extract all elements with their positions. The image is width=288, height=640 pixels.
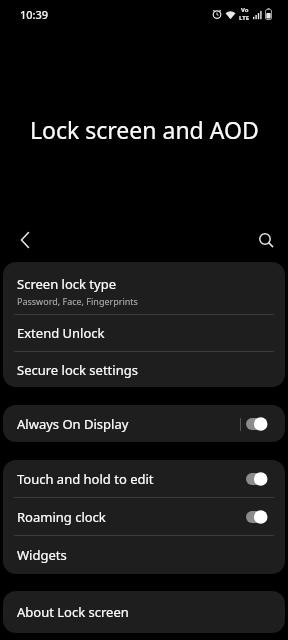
staticText: 10:39 xyxy=(20,7,49,22)
staticText: Touch and hold to edit xyxy=(17,470,154,488)
button[interactable]: Roaming clock xyxy=(3,498,285,535)
button[interactable]: Secure lock settings xyxy=(3,352,285,387)
staticText: Secure lock settings xyxy=(17,361,138,379)
staticText: Roaming clock xyxy=(17,508,106,526)
staticText: Screen lock type xyxy=(17,275,116,293)
staticText: About Lock screen xyxy=(17,603,129,621)
staticText: Widgets xyxy=(17,546,67,564)
staticText: Password, Face, Fingerprints xyxy=(17,295,138,307)
staticText: LTE xyxy=(239,14,250,22)
button[interactable]: Widgets xyxy=(3,536,285,574)
button[interactable]: Always On Display xyxy=(3,405,285,442)
button[interactable]: Screen lock type xyxy=(3,262,285,314)
staticText: Always On Display xyxy=(17,415,129,433)
button[interactable]: About Lock screen xyxy=(3,591,285,633)
button[interactable] xyxy=(6,220,46,260)
staticText: Extend Unlock xyxy=(17,324,105,342)
staticText: Vo xyxy=(241,6,249,14)
button[interactable]: Extend Unlock xyxy=(3,315,285,351)
button[interactable]: Touch and hold to edit xyxy=(3,460,285,497)
staticText: Lock screen and AOD xyxy=(30,114,259,145)
button[interactable] xyxy=(244,220,288,260)
